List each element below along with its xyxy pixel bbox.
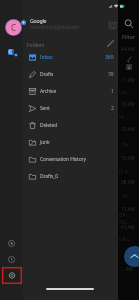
staticText: 41 AM [121,224,135,230]
staticText: 10 AM [121,155,135,161]
staticText: Junk [40,139,50,146]
button[interactable]: Archive [0,83,118,100]
staticText: Sent [40,105,50,112]
button[interactable]: Junk [0,134,118,151]
staticText: 369 [105,54,114,61]
staticText: OU… [119,219,130,225]
button[interactable]: Shortcuts [8,240,15,247]
button[interactable]: C [5,19,22,36]
staticText: Conversation History [40,156,86,163]
button[interactable]: Conversation History [0,151,118,168]
staticText: … PM [121,266,133,272]
staticText: C [11,22,17,33]
button[interactable]: Help [8,256,15,263]
button[interactable]: Outlook account [8,49,14,55]
staticText: 11 AM [121,206,135,212]
staticText: Re… [119,114,129,120]
staticText: cmacdirron@gmail.com [30,24,80,30]
button[interactable]: Drafts_0 [0,168,118,185]
staticText: 39 [108,71,114,78]
staticText: IC a… [119,168,131,174]
staticText: Deleted [40,122,58,129]
button[interactable]: Settings [2,267,22,284]
staticText: 1 [111,88,114,95]
staticText: for… [122,193,132,199]
staticText: 10 AM [121,126,135,132]
staticText: Ceo… [119,89,131,95]
button[interactable]: Sent [0,100,118,117]
staticText: Google [30,17,47,24]
button[interactable]: Search [124,19,134,29]
staticText: Archive [40,88,57,95]
button[interactable]: Reminders [108,21,117,30]
staticText: 10 AM [121,101,135,107]
staticText: 44 AM [121,46,135,52]
staticText: 2 [128,65,131,70]
staticText: 08 AM [121,179,135,185]
staticText: Inbox [40,54,53,61]
staticText: e &o… [119,236,133,242]
button[interactable]: Edit folders [106,39,115,48]
staticText: Folders [27,42,45,49]
button[interactable]: Drafts [0,66,118,83]
button[interactable]: Inbox [0,49,118,66]
staticText: Drafts [40,71,54,78]
button[interactable]: Deleted [0,117,118,134]
button[interactable]: Compose mail [124,246,139,267]
staticText: 2 [111,105,114,112]
staticText: OP -… [119,212,132,218]
staticText: Drafts_0 [40,173,59,180]
staticText: 11 AM [121,77,135,83]
staticText: Filter [122,33,136,40]
staticText: Ple… [122,142,133,148]
